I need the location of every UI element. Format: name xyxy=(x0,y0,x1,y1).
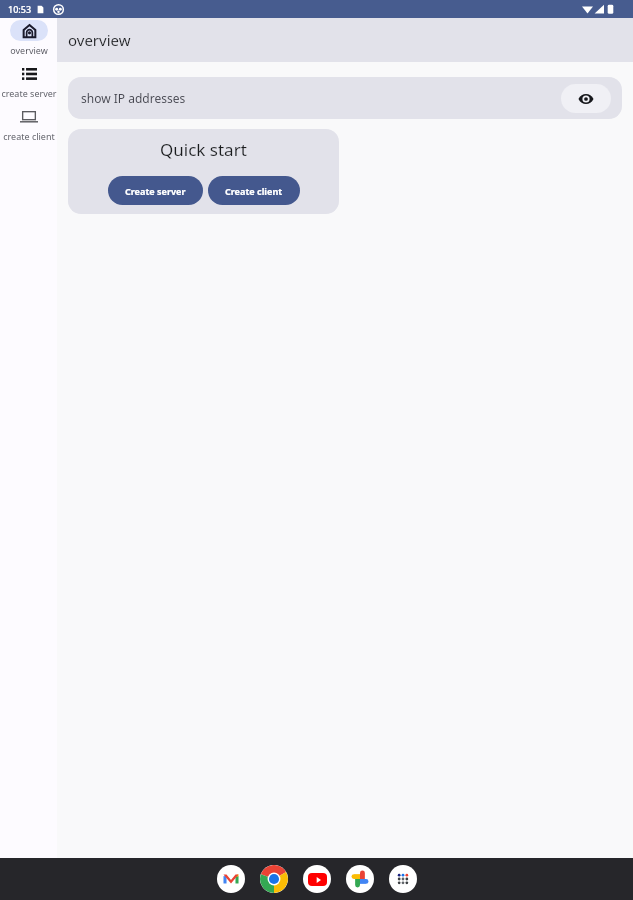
staticText: 10:53 xyxy=(8,3,32,15)
button[interactable]: overview xyxy=(0,20,57,56)
staticText: overview xyxy=(10,44,48,56)
staticText: Quick start xyxy=(160,138,247,161)
button[interactable]: Photos xyxy=(346,865,374,893)
button[interactable]: YouTube xyxy=(303,865,331,893)
button[interactable]: Show IP addresses xyxy=(561,84,611,113)
staticText: show IP addresses xyxy=(81,90,186,106)
button[interactable]: Create server xyxy=(108,176,203,205)
staticText: Create client xyxy=(225,185,283,197)
button[interactable]: Create client xyxy=(208,176,300,205)
staticText: Create server xyxy=(125,185,186,197)
staticText: create server xyxy=(1,87,57,99)
button[interactable]: Chrome xyxy=(260,865,288,893)
staticText: create client xyxy=(3,130,55,142)
button[interactable]: Gmail xyxy=(217,865,245,893)
button[interactable]: create client xyxy=(0,106,57,142)
button[interactable]: show IP addresses xyxy=(68,77,622,119)
button[interactable]: All apps xyxy=(389,865,417,893)
button[interactable]: create server xyxy=(0,63,57,99)
staticText: overview xyxy=(68,30,131,50)
